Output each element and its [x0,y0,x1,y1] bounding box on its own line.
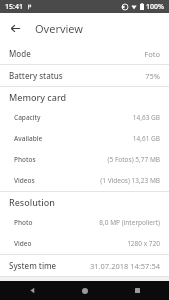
staticText: 14,61 GB [132,134,160,143]
button[interactable]: Home [65,281,105,300]
button[interactable]: Back [12,281,52,300]
staticText: Overview [35,21,83,36]
staticText: Video [14,239,32,248]
button[interactable]: Videos [0,170,169,191]
staticText: 75% [145,71,160,81]
staticText: Available [14,134,43,143]
staticText: Photos [14,155,36,164]
staticText: Memory card [9,91,67,103]
staticText: System time [9,260,57,271]
staticText: Foto [144,49,160,59]
staticText: Resolution [9,196,55,208]
staticText: Mode [9,48,31,59]
staticText: 15:41 [5,2,23,12]
button[interactable]: Back [0,13,30,43]
button[interactable]: Mode [0,43,169,64]
staticText: 31.07.2018 14:57:54 [89,261,160,271]
staticText: Photo [14,218,33,227]
button[interactable]: System time [0,255,169,276]
button[interactable]: Battery status [0,65,169,86]
staticText: (1 Videos) 13,23 MB [100,176,160,185]
staticText: 8,0 MP (interpoliert) [99,218,160,227]
button[interactable]: Available [0,128,169,149]
button[interactable]: Video [0,233,169,254]
button[interactable]: Photos [0,149,169,170]
button[interactable]: Photo [0,212,169,233]
button[interactable]: Recent apps [117,281,157,300]
staticText: Videos [14,176,35,185]
staticText: Battery status [9,70,63,81]
staticText: 1280 x 720 [127,239,160,248]
staticText: Capacity [14,113,41,122]
staticText: 100% [146,2,164,12]
button[interactable]: Capacity [0,107,169,128]
staticText: 14,63 GB [132,113,160,122]
staticText: (5 Fotos) 5,77 MB [107,155,160,164]
